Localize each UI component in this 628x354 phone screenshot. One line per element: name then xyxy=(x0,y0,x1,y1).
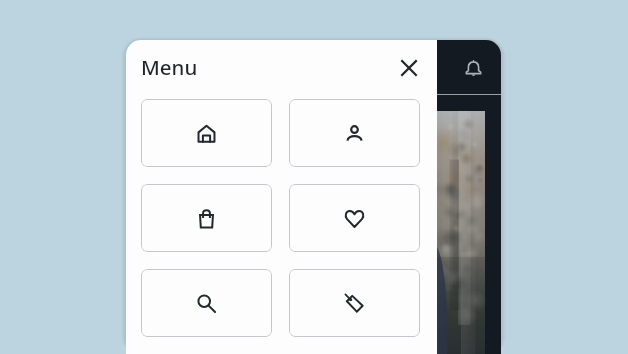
button[interactable]: Profile xyxy=(289,99,420,167)
button[interactable]: Offers xyxy=(289,269,420,337)
button[interactable]: Close menu xyxy=(397,56,421,80)
staticText: Menu xyxy=(141,53,198,81)
button[interactable]: Home xyxy=(141,99,272,167)
button[interactable]: Shop xyxy=(141,184,272,252)
button[interactable]: Favourites xyxy=(289,184,420,252)
button[interactable]: Search xyxy=(141,269,272,337)
button[interactable]: Notifications xyxy=(437,40,501,95)
